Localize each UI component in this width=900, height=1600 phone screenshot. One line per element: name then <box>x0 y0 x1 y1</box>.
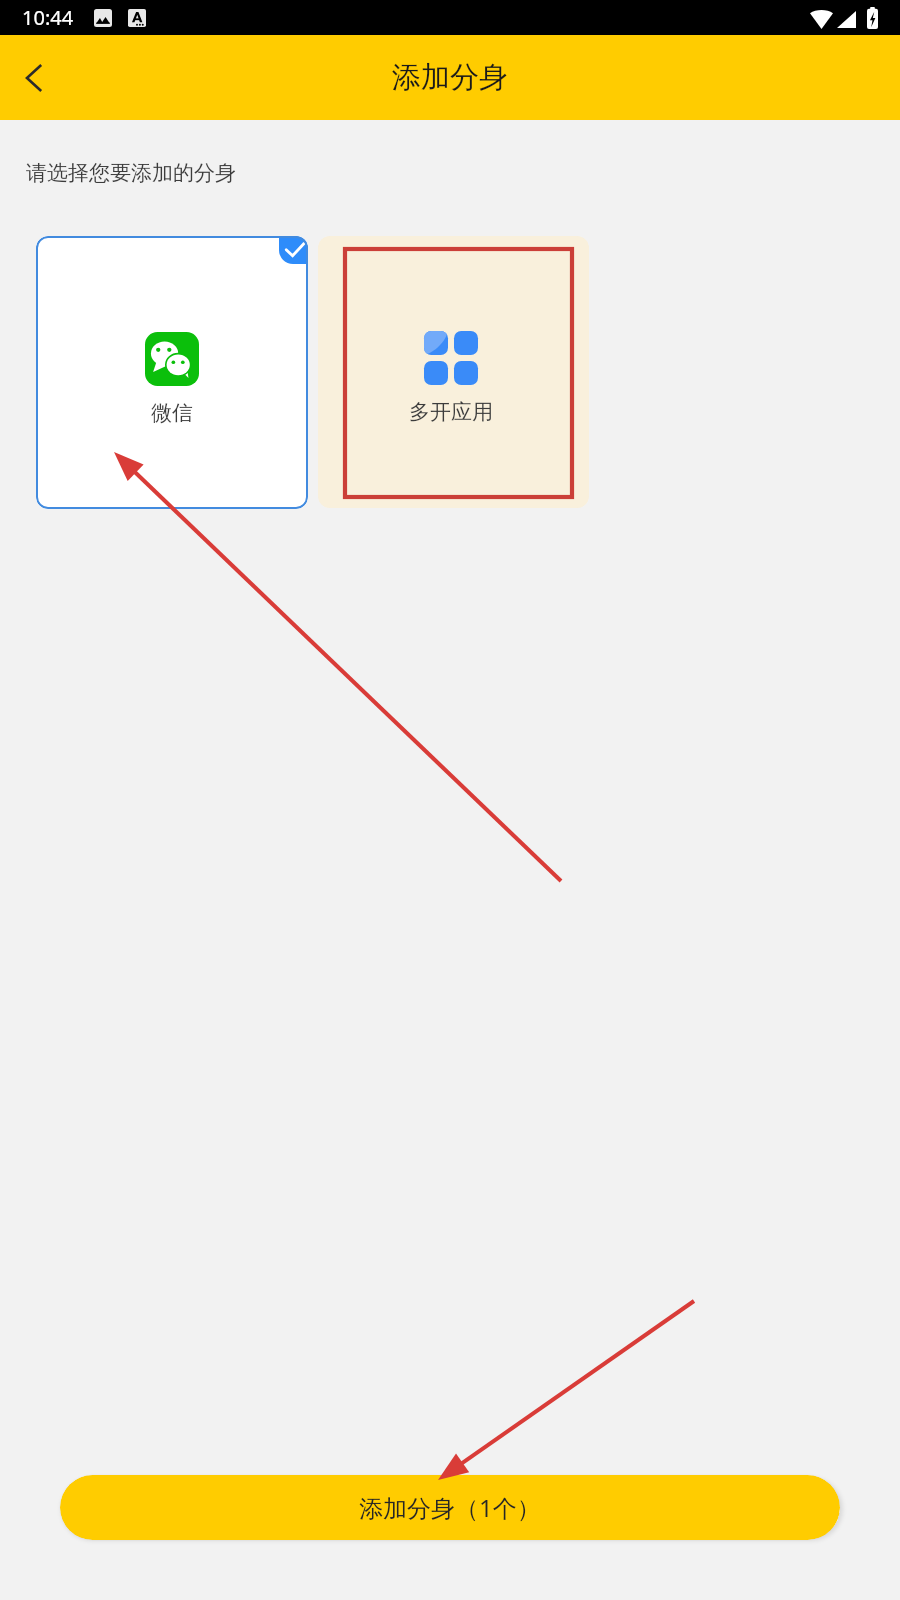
staticText: 多开应用 <box>409 399 493 425</box>
button[interactable]: 多开应用 <box>318 236 589 508</box>
button[interactable]: 微信 <box>36 236 308 509</box>
staticText: 请选择您要添加的分身 <box>26 160 236 186</box>
button[interactable]: Back <box>0 35 68 120</box>
staticText: 添加分身（1个） <box>359 1491 541 1524</box>
staticText: 添加分身 <box>392 59 508 96</box>
staticText: 10:44 <box>22 4 74 31</box>
staticText: 微信 <box>151 400 193 426</box>
button[interactable]: 添加分身（1个） <box>60 1475 840 1540</box>
